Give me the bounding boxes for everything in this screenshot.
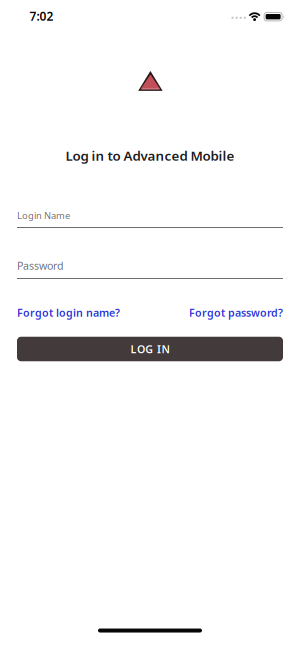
staticText: Forgot login name? (17, 306, 120, 320)
button[interactable]: Forgot login name? (17, 306, 120, 320)
staticText: Forgot password? (189, 306, 283, 320)
staticText: 7:02 (29, 8, 53, 24)
button[interactable]: LOG IN (17, 337, 283, 361)
button[interactable]: Password (17, 259, 283, 285)
staticText: Login Name (17, 209, 70, 221)
button[interactable]: Forgot password? (189, 306, 283, 320)
button[interactable]: Login Name (17, 208, 283, 234)
staticText: Log in to Advanced Mobile (65, 147, 234, 164)
staticText: Password (17, 258, 64, 273)
staticText: LOG IN (130, 342, 169, 356)
